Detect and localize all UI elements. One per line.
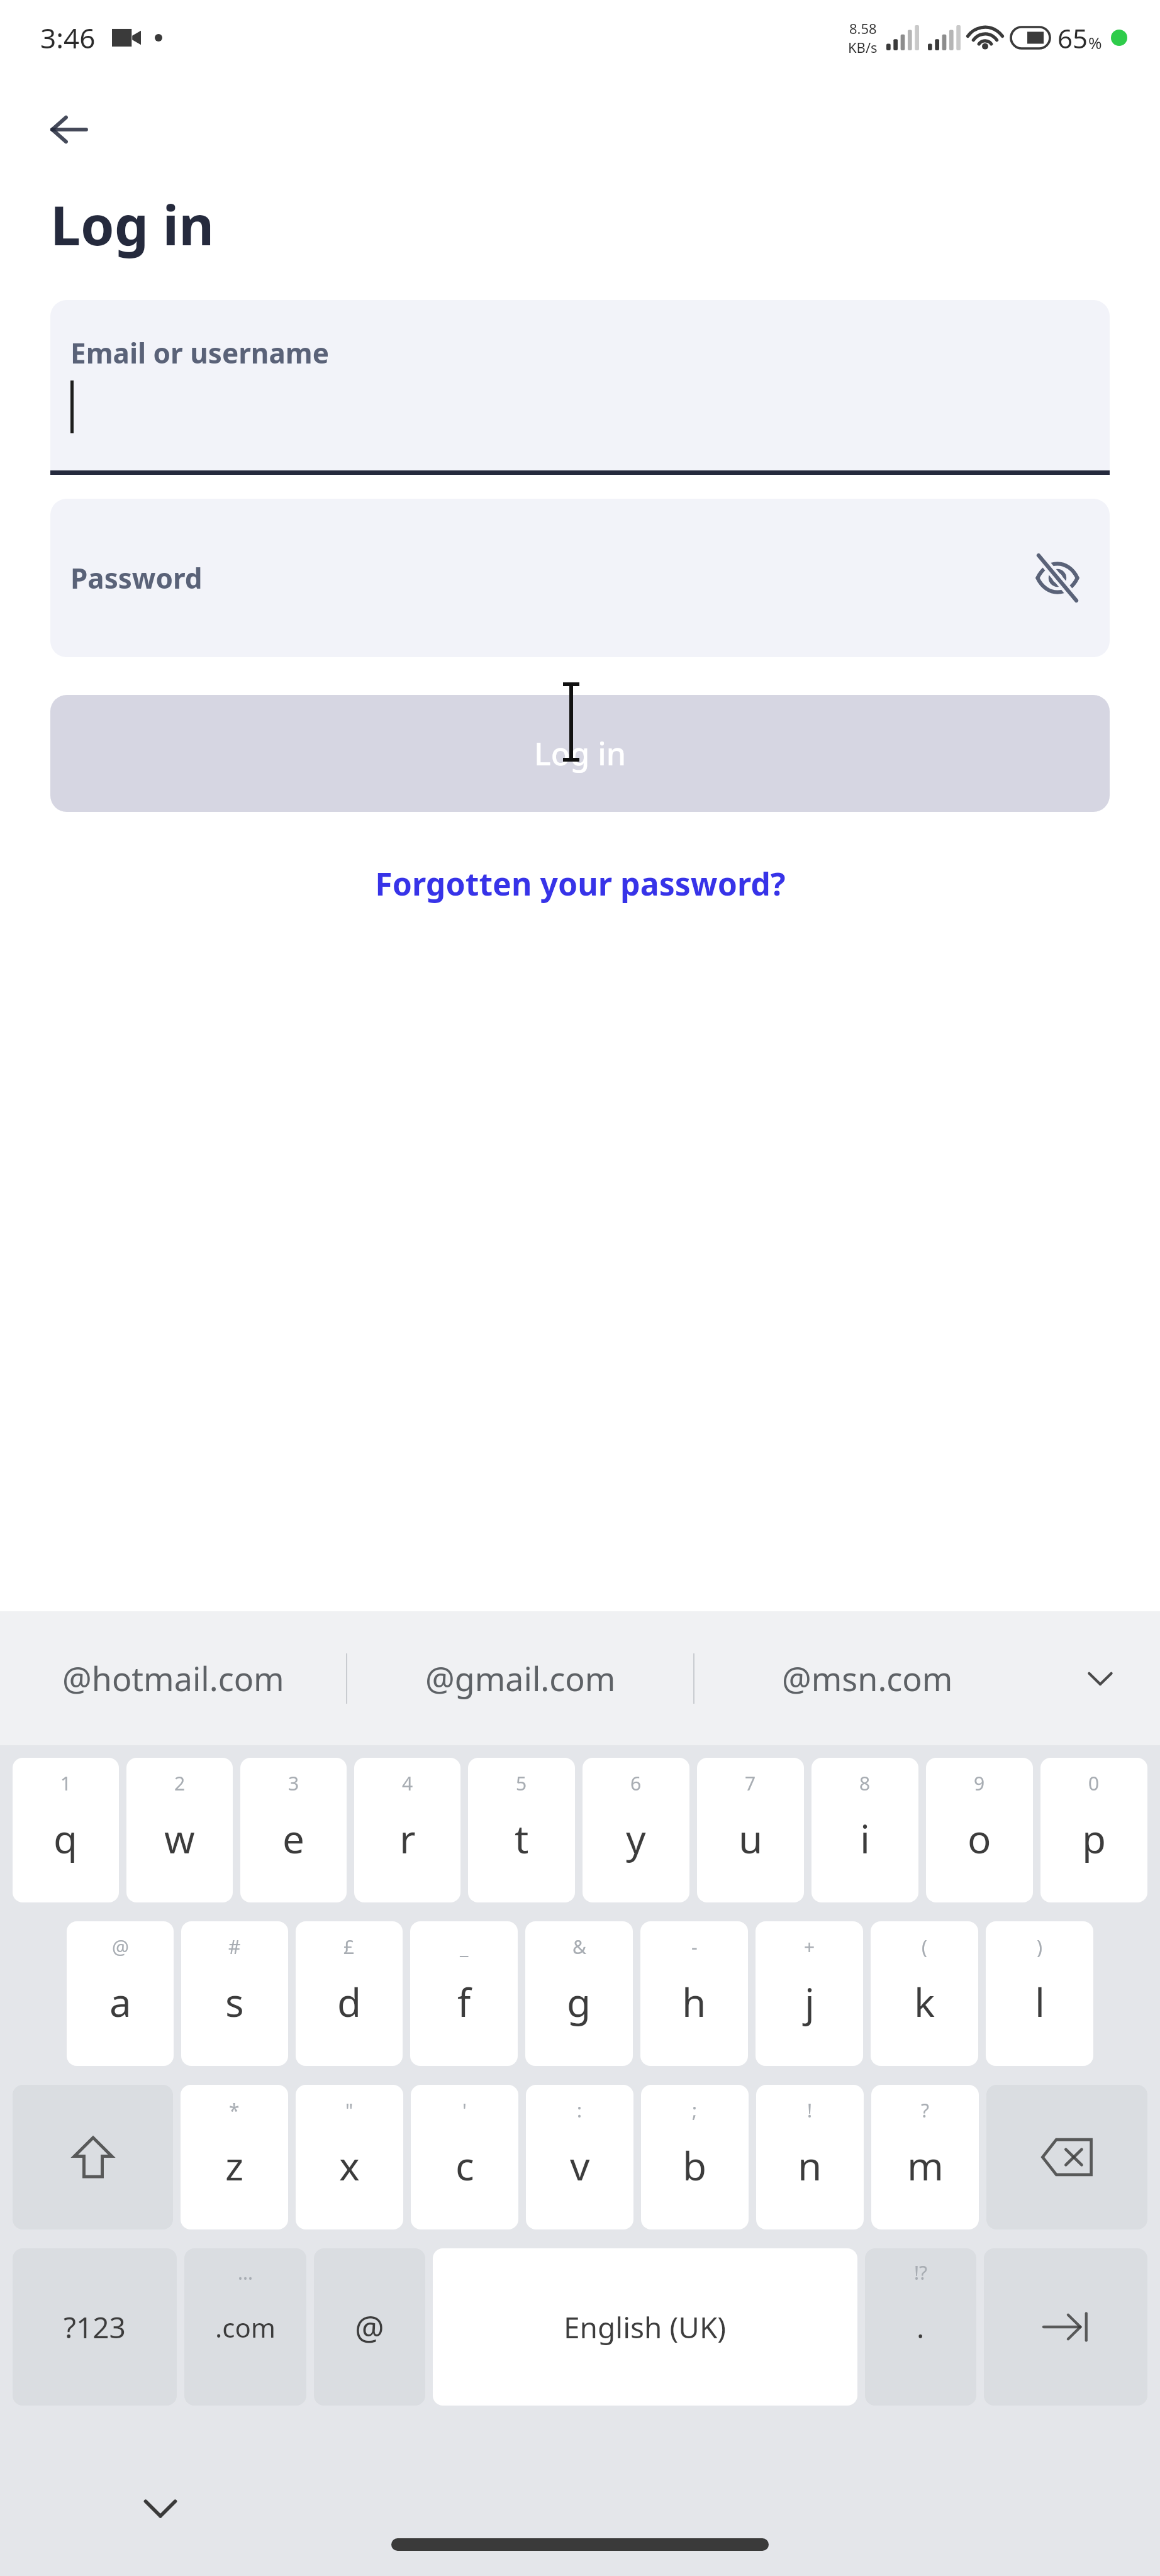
button[interactable]: ... [184,2248,306,2406]
staticText: - [691,1934,698,1960]
button[interactable]: £ [296,1921,403,2066]
staticText: ' [462,2097,467,2123]
button[interactable]: " [296,2085,403,2229]
staticText: v [570,2139,590,2192]
button[interactable]: Email or username [50,300,1110,475]
staticText: s [225,1975,244,2028]
staticText: @msn.com [782,1656,953,1701]
staticText: @hotmail.com [62,1656,284,1701]
staticText: 0 [1088,1770,1100,1796]
staticText: KB/s [848,38,878,57]
button[interactable]: 7 [697,1758,804,1902]
button[interactable]: @gmail.com [347,1611,693,1745]
staticText: 3:46 [40,19,96,57]
staticText: Password [70,559,203,597]
button[interactable]: 6 [583,1758,689,1902]
staticText: 5 [516,1770,527,1796]
staticText: : [577,2097,583,2123]
staticText: # [228,1934,241,1960]
staticText: 6 [630,1770,642,1796]
staticText: Email or username [70,334,329,372]
staticText: f [457,1975,471,2028]
staticText: % [1088,31,1102,53]
staticText: 1 [60,1770,72,1796]
button[interactable]: * [181,2085,288,2229]
staticText: h [682,1975,706,2028]
staticText: @gmail.com [425,1656,616,1701]
button[interactable]: : [526,2085,633,2229]
button[interactable]: & [525,1921,633,2066]
staticText: ! [807,2097,813,2123]
staticText: i [860,1812,870,1865]
button[interactable]: 8 [811,1758,918,1902]
button[interactable]: 1 [13,1758,119,1902]
button[interactable]: @ [67,1921,174,2066]
staticText: w [164,1812,195,1865]
button[interactable]: English (UK) [433,2248,857,2406]
staticText: a [109,1975,131,2028]
button[interactable]: 0 [1040,1758,1147,1902]
staticText: 65 [1057,20,1088,56]
staticText: t [515,1812,529,1865]
button[interactable]: _ [410,1921,518,2066]
button[interactable]: @ [314,2248,425,2406]
staticText: !? [914,2260,928,2285]
button[interactable]: # [181,1921,288,2066]
staticText: ; [692,2097,698,2123]
button[interactable]: - [640,1921,748,2066]
button[interactable]: Shift [13,2085,173,2229]
button[interactable]: Backspace [986,2085,1147,2229]
staticText: l [1035,1975,1045,2028]
staticText: u [739,1812,763,1865]
button[interactable]: ' [411,2085,518,2229]
staticText: e [282,1812,304,1865]
staticText: r [399,1812,416,1865]
button[interactable]: 2 [126,1758,233,1902]
staticText: * [229,2097,240,2123]
button[interactable]: ?123 [13,2248,177,2406]
staticText: ... [238,2260,254,2285]
button[interactable]: !? [865,2248,976,2406]
button[interactable]: Next field [984,2248,1147,2406]
button[interactable]: Show password [1023,543,1092,613]
staticText: English (UK) [564,2307,727,2347]
staticText: b [683,2139,707,2192]
button[interactable]: ? [871,2085,979,2229]
staticText: n [798,2139,822,2192]
staticText: 7 [745,1770,756,1796]
staticText: 8.58 [849,19,877,38]
button[interactable]: 5 [468,1758,575,1902]
staticText: m [907,2139,944,2192]
staticText: o [968,1812,991,1865]
staticText: 9 [974,1770,985,1796]
button[interactable]: Forgotten your password? [362,855,798,913]
button[interactable]: 4 [354,1758,460,1902]
button[interactable]: Password [50,499,1110,657]
button[interactable]: ! [756,2085,864,2229]
button[interactable]: More suggestions [1040,1611,1160,1745]
button[interactable]: Hide keyboard [126,2473,195,2543]
button[interactable]: 3 [240,1758,347,1902]
staticText: q [53,1812,78,1865]
staticText: _ [460,1934,469,1960]
button[interactable]: ; [641,2085,749,2229]
staticText: 8 [859,1770,871,1796]
staticText: @ [355,2305,384,2350]
button[interactable]: + [756,1921,863,2066]
staticText: Forgotten your password? [375,862,786,905]
staticText: g [567,1975,591,2028]
staticText: " [345,2097,354,2123]
staticText: ? [921,2097,930,2123]
button[interactable]: ) [986,1921,1093,2066]
staticText: + [804,1934,815,1960]
button[interactable]: @msn.com [694,1611,1040,1745]
staticText: .com [215,2309,276,2345]
button[interactable]: Back [39,99,99,160]
button[interactable]: 9 [926,1758,1033,1902]
staticText: Log in [534,732,627,775]
staticText: 4 [402,1770,413,1796]
staticText: Log in [50,187,215,261]
button[interactable]: ( [871,1921,978,2066]
button[interactable]: Log in [50,695,1110,812]
button[interactable]: @hotmail.com [0,1611,346,1745]
